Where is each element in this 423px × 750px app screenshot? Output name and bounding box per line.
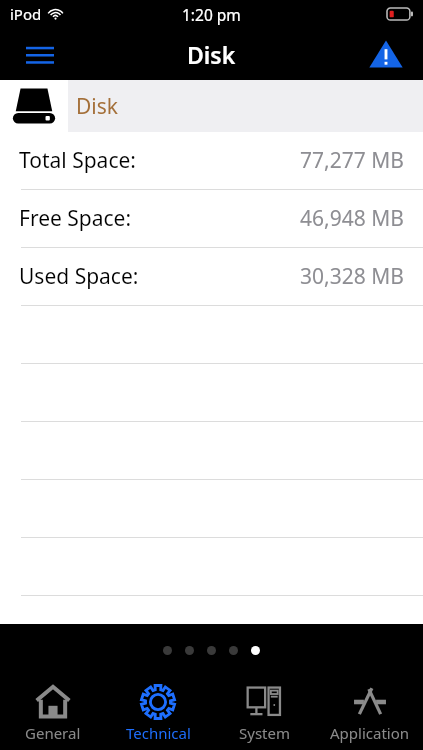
button[interactable]: Free Space: [0,190,423,248]
button[interactable]: Total Space: [0,132,423,190]
staticText: Application [330,723,410,743]
button[interactable]: Warning [361,31,411,77]
staticText: 77,277 MB [300,146,404,175]
staticText: Used Space: [19,262,139,291]
staticText: 1:20 pm [182,4,241,25]
staticText: Disk [187,39,236,70]
staticText: Total Space: [19,146,136,175]
button[interactable]: Application [317,676,423,750]
button[interactable]: System [211,676,317,750]
staticText: 30,328 MB [300,262,404,291]
button[interactable]: General [0,676,105,750]
button[interactable]: Technical [105,676,211,750]
button[interactable]: Menu [14,32,66,76]
button[interactable]: Used Space: [0,248,423,306]
staticText: Free Space: [19,204,132,233]
staticText: Technical [126,723,191,743]
staticText: System [239,723,290,743]
staticText: 46,948 MB [300,204,404,233]
staticText: Disk [76,92,119,121]
staticText: iPod [10,4,42,24]
staticText: General [25,723,81,743]
